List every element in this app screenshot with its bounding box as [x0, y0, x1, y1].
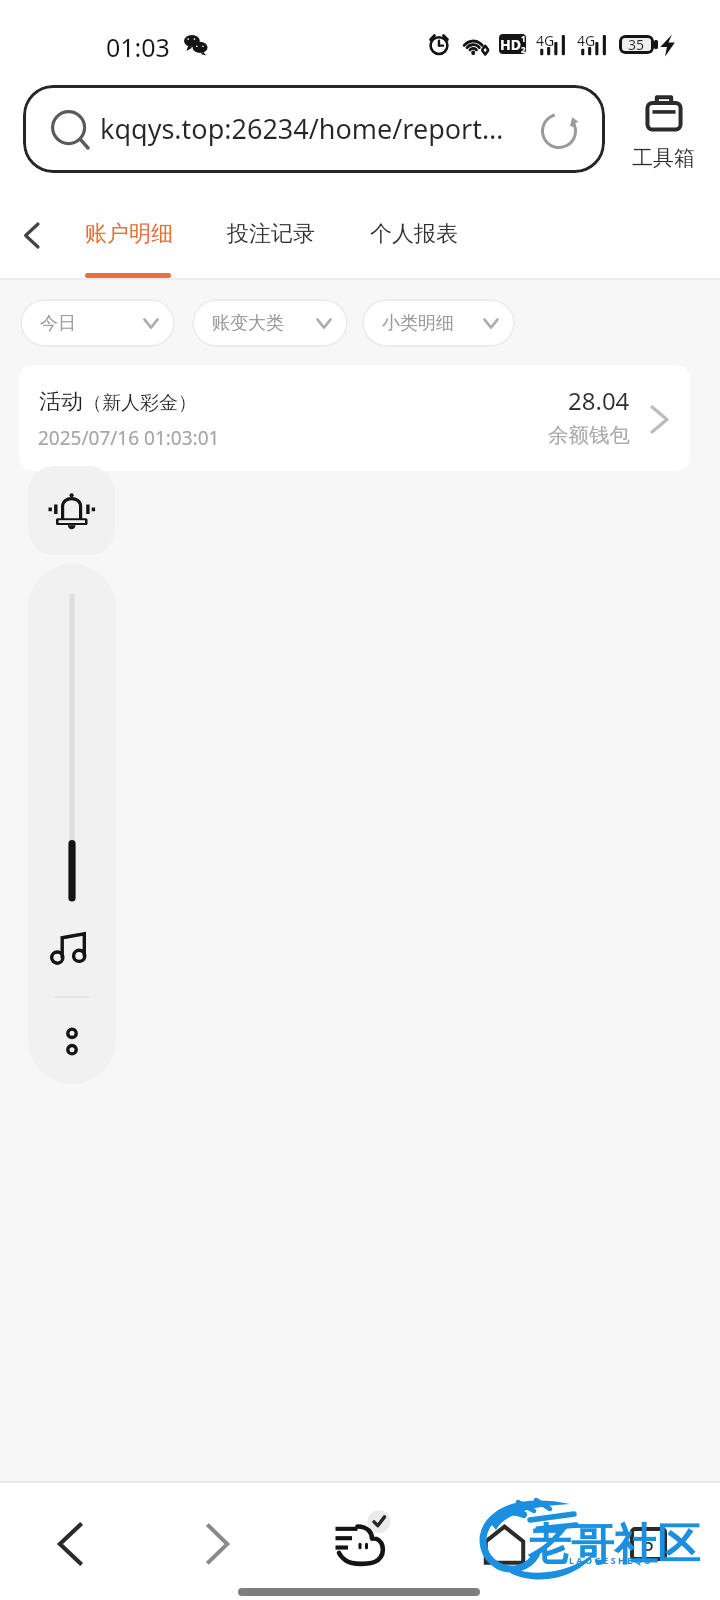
staticText: 4G — [577, 31, 596, 50]
staticText: 活动 — [39, 388, 83, 416]
staticText: 35 — [628, 35, 645, 54]
staticText: 今日 — [40, 312, 76, 335]
button[interactable]: 个人报表 — [358, 196, 470, 278]
button[interactable]: 投注记录 — [215, 196, 327, 278]
button[interactable]: 今日 — [20, 299, 175, 347]
button[interactable]: 账变大类 — [192, 299, 348, 347]
button[interactable]: Home — [464, 1502, 544, 1586]
staticText: 小类明细 — [382, 312, 454, 335]
button[interactable]: Menu — [318, 1496, 402, 1584]
staticText: 投注记录 — [227, 220, 315, 248]
button[interactable]: 活动 — [19, 365, 690, 471]
staticText: 个人报表 — [370, 220, 458, 248]
button[interactable]: More options — [63, 1026, 81, 1056]
staticText: kqqys.top:26234/home/report… — [100, 110, 504, 147]
button[interactable]: Ringer mode — [28, 466, 115, 555]
button[interactable]: Media volume — [52, 933, 86, 963]
button[interactable]: Back — [0, 199, 62, 271]
button[interactable]: kqqys.top:26234/home/report… — [23, 85, 605, 173]
button[interactable]: Tabs — [608, 1502, 688, 1586]
button[interactable]: 账户明细 — [73, 196, 185, 278]
staticText: 余额钱包 — [548, 422, 630, 448]
staticText: L A O G E S H E Q U — [569, 1554, 651, 1566]
button[interactable]: Refresh — [540, 112, 578, 150]
staticText: 4G — [536, 31, 555, 50]
staticText: （新人彩金） — [83, 391, 197, 415]
staticText: 2025/07/16 01:03:01 — [38, 425, 220, 451]
staticText: 28.04 — [568, 384, 630, 417]
staticText: 2 — [521, 44, 526, 53]
staticText: 5 — [643, 1531, 654, 1557]
staticText: 1 — [521, 34, 526, 44]
button[interactable]: Forward — [178, 1502, 258, 1586]
staticText: 01:03 — [106, 30, 170, 64]
button[interactable]: Back — [30, 1502, 110, 1586]
staticText: 工具箱 — [632, 145, 695, 171]
staticText: 老哥社区 — [528, 1518, 700, 1572]
staticText: 账户明细 — [85, 220, 173, 248]
staticText: HD — [500, 35, 521, 54]
staticText: 账变大类 — [212, 312, 284, 335]
button[interactable]: 小类明细 — [362, 299, 515, 347]
button[interactable]: 工具箱 — [624, 88, 704, 176]
